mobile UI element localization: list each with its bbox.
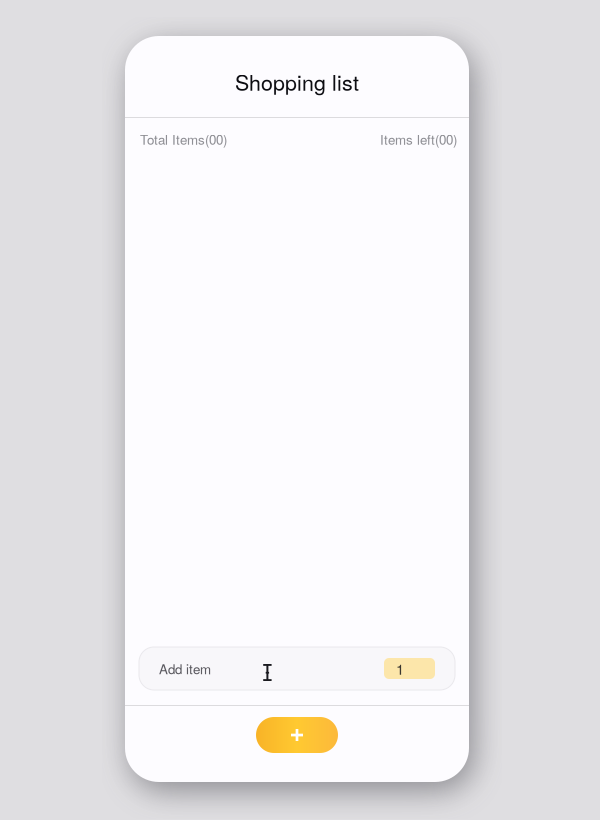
staticText: 1 [396, 658, 404, 679]
staticText: Add item [159, 659, 211, 678]
staticText: Shopping list [235, 66, 359, 97]
staticText: Items left(00) [380, 129, 457, 149]
staticText: Total Items(00) [140, 129, 227, 149]
button[interactable]: Add item [256, 717, 338, 753]
